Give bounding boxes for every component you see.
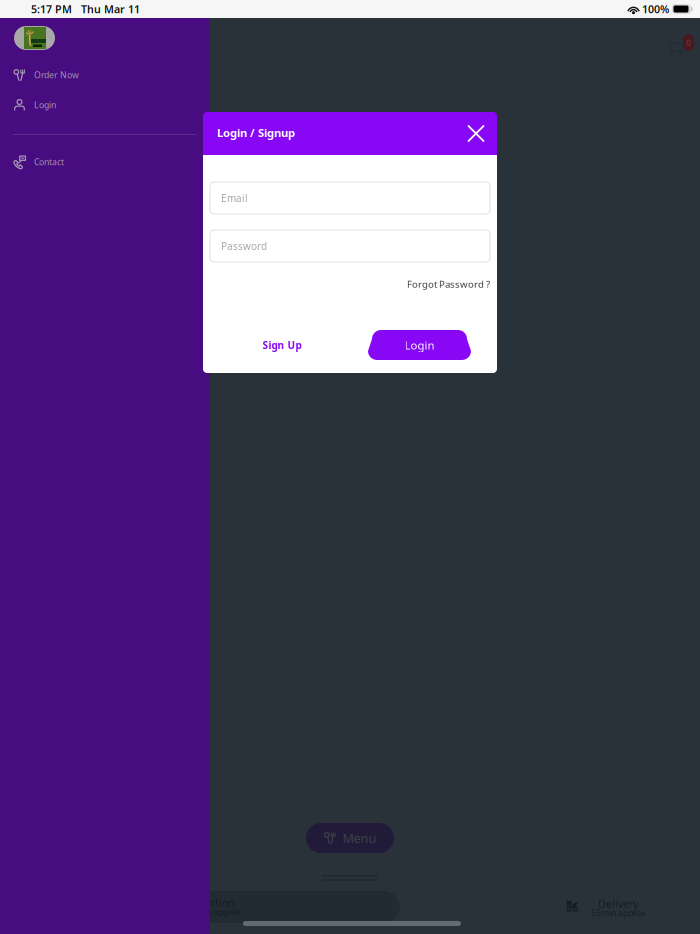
staticText: Thu Mar 11 bbox=[81, 2, 140, 16]
staticText: 25min approx bbox=[187, 906, 242, 918]
staticText: 55min approx bbox=[591, 907, 646, 919]
button[interactable]: Order Now bbox=[0, 62, 210, 88]
button[interactable]: Menu bbox=[306, 823, 394, 853]
staticText: Email bbox=[221, 191, 248, 205]
staticText: Sign Up bbox=[262, 338, 301, 352]
button[interactable]: Cart bbox=[660, 28, 700, 62]
button[interactable]: Close bbox=[463, 120, 489, 146]
button[interactable]: Delivery bbox=[566, 896, 646, 924]
button[interactable]: Login bbox=[0, 92, 210, 118]
staticText: Menu bbox=[342, 829, 376, 847]
staticText: Login bbox=[34, 99, 56, 111]
button[interactable]: Login bbox=[368, 330, 471, 360]
button[interactable]: Sign Up bbox=[247, 333, 317, 357]
button[interactable]: Forgot Password ? bbox=[407, 273, 490, 295]
button[interactable]: Collection bbox=[144, 891, 400, 923]
staticText: Forgot Password ? bbox=[407, 277, 490, 291]
staticText: Password bbox=[221, 239, 267, 253]
staticText: Delivery bbox=[598, 896, 638, 911]
staticText: 0 bbox=[686, 37, 691, 48]
staticText: Login / Signup bbox=[217, 125, 295, 140]
button[interactable]: Contact bbox=[0, 149, 210, 175]
staticText: Collection bbox=[185, 895, 235, 910]
staticText: Login bbox=[404, 337, 434, 353]
staticText: 100% bbox=[642, 2, 669, 16]
staticText: Contact bbox=[34, 156, 64, 168]
staticText: Order Now bbox=[34, 69, 79, 81]
button[interactable]: Restaurant logo bbox=[14, 26, 55, 50]
staticText: 5:17 PM bbox=[31, 2, 72, 16]
